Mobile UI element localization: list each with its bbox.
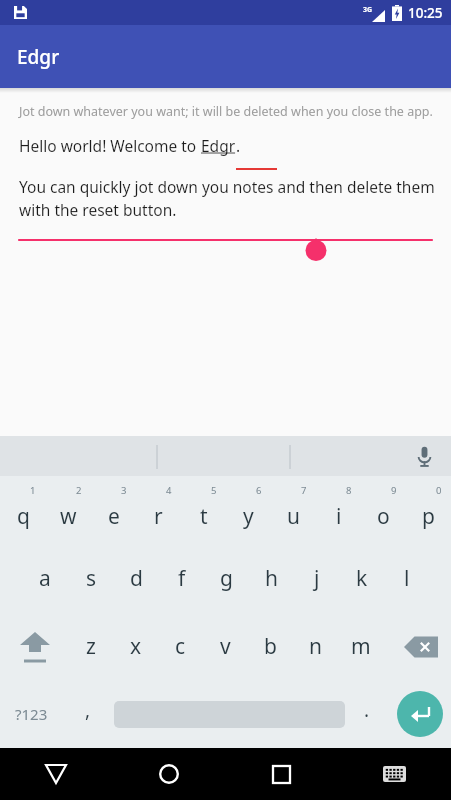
button[interactable]: Home: [112, 748, 225, 800]
staticText: o: [377, 502, 390, 531]
button[interactable]: 4: [136, 476, 181, 544]
button[interactable]: 9: [361, 476, 406, 544]
button[interactable]: a: [22, 544, 68, 612]
button[interactable]: Switch keyboard: [338, 748, 451, 800]
staticText: ?123: [15, 704, 48, 724]
staticText: i: [336, 502, 342, 531]
staticText: r: [154, 502, 163, 531]
staticText: s: [86, 564, 97, 593]
staticText: 6: [256, 484, 262, 497]
staticText: 7: [301, 484, 307, 497]
button[interactable]: 0: [406, 476, 451, 544]
staticText: y: [243, 502, 254, 531]
staticText: .: [364, 697, 370, 723]
button[interactable]: s: [68, 544, 114, 612]
button[interactable]: d: [114, 544, 159, 612]
staticText: g: [220, 564, 233, 593]
staticText: f: [178, 564, 186, 593]
button[interactable]: 6: [226, 476, 271, 544]
staticText: 4: [166, 484, 172, 497]
button[interactable]: 5: [181, 476, 226, 544]
staticText: e: [108, 502, 120, 531]
staticText: You can quickly jot down you notes and t…: [19, 176, 435, 221]
button[interactable]: z: [68, 612, 113, 680]
button[interactable]: m: [338, 612, 383, 680]
staticText: Edgr: [17, 44, 60, 70]
staticText: ,: [85, 697, 91, 723]
button[interactable]: Backspace: [383, 612, 451, 680]
staticText: Edgr: [201, 135, 236, 156]
button[interactable]: 2: [46, 476, 91, 544]
staticText: 1: [30, 484, 36, 497]
staticText: c: [175, 632, 186, 661]
button[interactable]: Shift: [0, 612, 68, 680]
staticText: 10:25: [408, 4, 443, 22]
staticText: h: [265, 564, 278, 593]
staticText: p: [422, 502, 435, 531]
button[interactable]: 7: [271, 476, 316, 544]
button[interactable]: x: [113, 612, 158, 680]
staticText: 3G: [363, 5, 373, 15]
staticText: j: [314, 564, 320, 593]
button[interactable]: f: [159, 544, 204, 612]
button[interactable]: Enter: [389, 680, 451, 748]
staticText: Hello world! Welcome to: [19, 135, 201, 156]
button[interactable]: l: [384, 544, 429, 612]
staticText: 0: [436, 484, 442, 497]
staticText: 9: [391, 484, 397, 497]
staticText: a: [39, 564, 51, 593]
staticText: b: [264, 632, 277, 661]
button[interactable]: c: [158, 612, 203, 680]
staticText: 2: [76, 484, 82, 497]
button[interactable]: k: [339, 544, 384, 612]
staticText: z: [86, 632, 96, 661]
button[interactable]: 1: [0, 476, 46, 544]
staticText: 3: [121, 484, 127, 497]
staticText: 8: [346, 484, 352, 497]
staticText: n: [309, 632, 322, 661]
button[interactable]: n: [293, 612, 338, 680]
staticText: x: [130, 632, 142, 661]
staticText: 5: [211, 484, 217, 497]
staticText: m: [351, 632, 371, 661]
button[interactable]: Back: [0, 748, 112, 800]
button[interactable]: Recents: [225, 748, 338, 800]
button[interactable]: ?123: [0, 680, 62, 748]
button[interactable]: v: [203, 612, 248, 680]
button[interactable]: j: [294, 544, 339, 612]
staticText: t: [200, 502, 208, 531]
staticText: Jot down whatever you want; it will be d…: [19, 103, 433, 120]
staticText: v: [220, 632, 231, 661]
staticText: k: [356, 564, 368, 593]
button[interactable]: ,: [62, 680, 114, 748]
button[interactable]: Voice input: [409, 441, 439, 471]
button[interactable]: .: [345, 680, 389, 748]
button[interactable]: Jot down whatever you want; it will be d…: [0, 88, 451, 436]
staticText: w: [60, 502, 77, 531]
staticText: l: [404, 564, 410, 593]
button[interactable]: 8: [316, 476, 361, 544]
staticText: .: [236, 135, 241, 156]
staticText: u: [287, 502, 300, 531]
button[interactable]: b: [248, 612, 293, 680]
button[interactable]: h: [249, 544, 294, 612]
staticText: d: [130, 564, 143, 593]
button[interactable]: g: [204, 544, 249, 612]
staticText: q: [17, 502, 30, 531]
button[interactable]: [114, 680, 345, 748]
button[interactable]: 3: [91, 476, 136, 544]
